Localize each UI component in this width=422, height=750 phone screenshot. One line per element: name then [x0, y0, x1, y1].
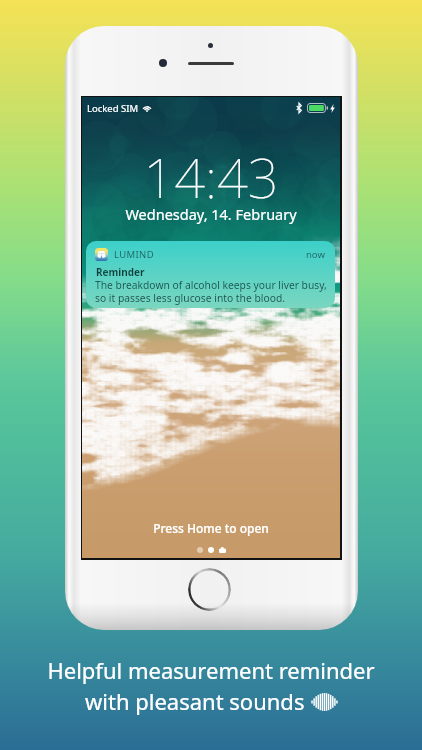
- staticText: Locked SIM: [87, 102, 139, 115]
- staticText: LUMIND: [114, 248, 154, 261]
- staticText: with pleasant sounds: [85, 686, 311, 716]
- staticText: Press Home to open: [82, 520, 340, 536]
- staticText: 14:43: [82, 140, 340, 214]
- staticText: Reminder: [96, 265, 145, 279]
- staticText: The breakdown of alcohol keeps your live…: [95, 278, 327, 292]
- button[interactable]: Home: [188, 568, 231, 611]
- button[interactable]: LUMIND: [86, 241, 335, 308]
- staticText: so it passes less glucose into the blood…: [95, 291, 285, 305]
- staticText: Wednesday, 14. February: [82, 204, 340, 224]
- staticText: now: [306, 248, 325, 261]
- staticText: Helpful measurement reminder: [0, 655, 422, 685]
